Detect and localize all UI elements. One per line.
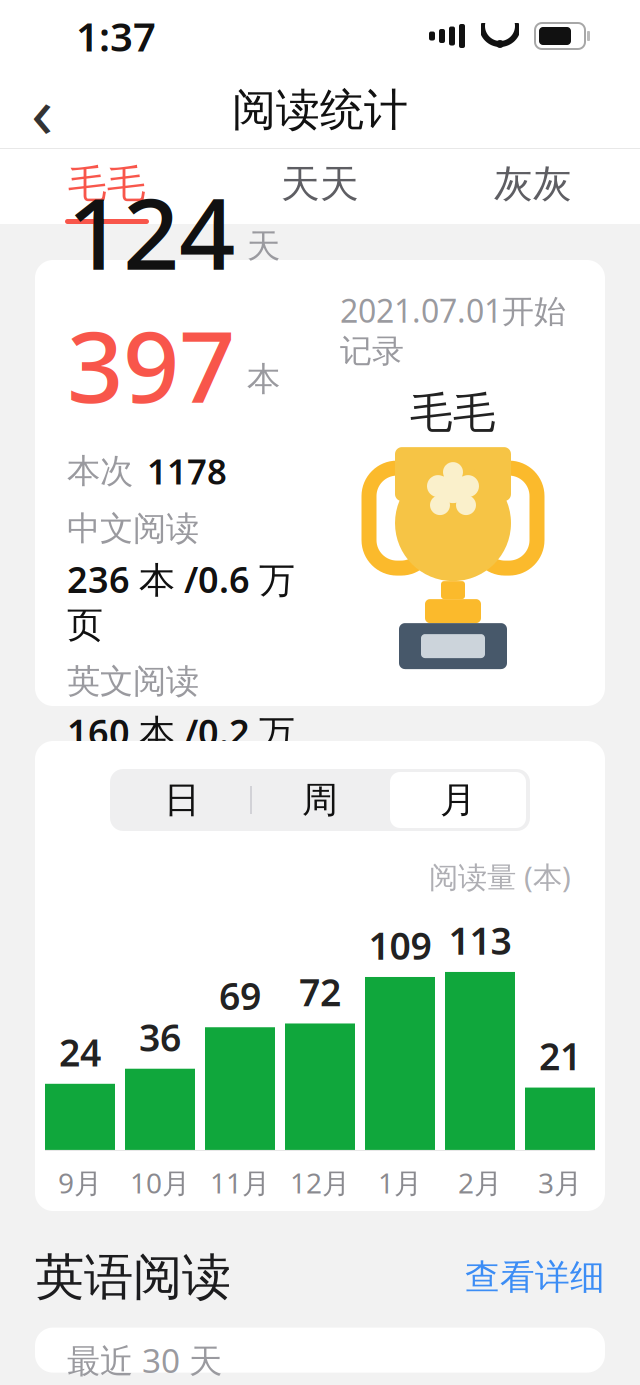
staticText: 2021.07.01开始记录	[340, 289, 566, 371]
staticText: 21	[539, 1031, 581, 1081]
staticText: 月	[440, 778, 476, 822]
staticText: 本	[247, 359, 280, 399]
staticText: 阅读统计	[232, 83, 408, 137]
staticText: 灰灰	[494, 160, 572, 208]
staticText: 1:37	[76, 9, 156, 62]
button[interactable]: Back	[0, 72, 84, 148]
staticText: 中文阅读	[67, 508, 199, 549]
staticText: 124	[67, 166, 235, 297]
button[interactable]: 毛毛	[0, 149, 213, 224]
staticText: 阅读量 (本)	[429, 857, 571, 896]
staticText: 36	[139, 1012, 181, 1062]
staticText: 11月	[210, 1164, 270, 1201]
staticText: 日	[164, 778, 200, 822]
button[interactable]: 日	[114, 772, 250, 828]
button[interactable]: 查看详细	[465, 1256, 605, 1299]
staticText: 最近 30 天	[67, 1338, 222, 1382]
staticText: 1178	[147, 448, 227, 494]
staticText: 113	[448, 915, 511, 965]
staticText: 10月	[130, 1164, 190, 1201]
button[interactable]: 月	[390, 772, 526, 828]
staticText: 英语阅读	[35, 1247, 231, 1308]
button[interactable]: 灰灰	[426, 149, 639, 224]
staticText: 109	[368, 920, 431, 970]
staticText: 本次	[67, 451, 133, 491]
staticText: 9月	[58, 1164, 102, 1201]
staticText: 12月	[290, 1164, 350, 1201]
button[interactable]: 天天	[213, 149, 426, 224]
staticText: 天	[247, 226, 280, 266]
staticText: 160 本 /0.2 万页	[67, 708, 295, 800]
staticText: 周	[302, 778, 338, 822]
staticText: 英文阅读	[67, 661, 199, 702]
staticText: 72	[299, 967, 341, 1016]
staticText: 1月	[378, 1164, 422, 1201]
button[interactable]: 周	[252, 772, 388, 828]
staticText: 天天	[281, 160, 359, 208]
staticText: 3月	[538, 1164, 582, 1201]
staticText: 2月	[458, 1164, 502, 1201]
staticText: 查看详细	[465, 1256, 605, 1299]
staticText: ‹	[31, 62, 53, 158]
staticText: 236 本 /0.6 万页	[67, 555, 295, 647]
staticText: 毛毛	[68, 160, 146, 208]
staticText: 397	[67, 299, 235, 430]
staticText: 69	[219, 971, 261, 1020]
staticText: 毛毛	[410, 387, 496, 439]
staticText: 24	[59, 1027, 101, 1077]
